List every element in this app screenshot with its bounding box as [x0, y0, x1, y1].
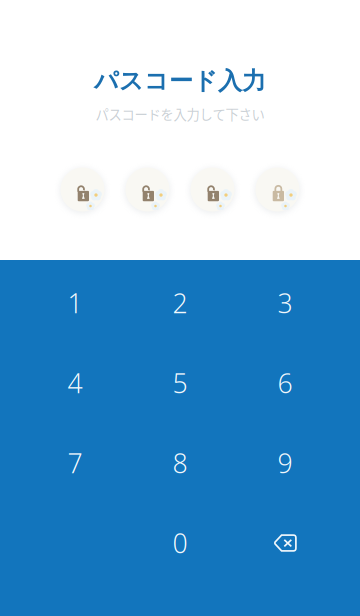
- staticText: 5: [172, 365, 187, 401]
- button[interactable]: 8: [127, 423, 232, 503]
- button[interactable]: 2: [127, 263, 232, 343]
- button[interactable]: 7: [22, 423, 127, 503]
- staticText: 8: [172, 445, 187, 481]
- staticText: 9: [277, 445, 292, 481]
- button[interactable]: 6: [232, 343, 337, 423]
- button[interactable]: 1: [22, 263, 127, 343]
- staticText: 4: [67, 365, 82, 401]
- staticText: 2: [172, 285, 187, 321]
- staticText: 6: [277, 365, 292, 401]
- staticText: パスコードを入力して下さい: [95, 104, 264, 123]
- staticText: 3: [277, 285, 292, 321]
- button[interactable]: 3: [232, 263, 337, 343]
- button[interactable]: Delete: [232, 503, 337, 583]
- button[interactable]: 4: [22, 343, 127, 423]
- staticText: パスコード入力: [94, 66, 266, 96]
- staticText: 0: [172, 525, 187, 561]
- button[interactable]: 0: [127, 503, 232, 583]
- button[interactable]: 5: [127, 343, 232, 423]
- staticText: 7: [67, 445, 82, 481]
- staticText: 1: [67, 285, 82, 321]
- button[interactable]: 9: [232, 423, 337, 503]
